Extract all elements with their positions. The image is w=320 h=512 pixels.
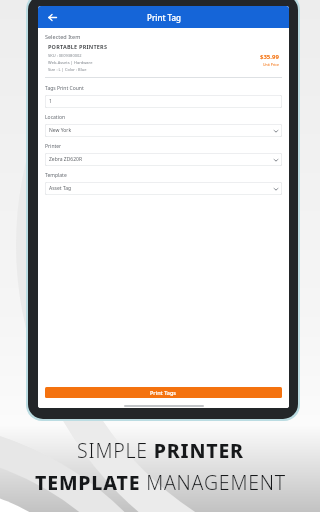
button[interactable]: New York — [45, 124, 282, 137]
staticText: Print Tags — [150, 389, 177, 396]
staticText: SIMPLE PRINTER — [77, 437, 244, 464]
staticText: TEMPLATE MANAGEMENT — [35, 469, 286, 496]
staticText: Location — [45, 114, 66, 121]
staticText: PORTABLE PRINTERS — [48, 43, 108, 50]
staticText: Size : L | Color : Blue — [48, 67, 87, 72]
staticText: Template — [45, 172, 67, 179]
staticText: Selected Item — [45, 33, 81, 40]
button[interactable]: Print Tags — [45, 387, 282, 398]
button[interactable]: Asset Tag — [45, 182, 282, 195]
staticText: $35.99 — [260, 53, 279, 61]
staticText: 1 — [49, 98, 52, 105]
staticText: Print Tag — [147, 12, 181, 23]
button[interactable]: 1 — [45, 95, 282, 108]
staticText: Tags Print Count — [45, 85, 84, 92]
button[interactable]: Back — [43, 8, 61, 26]
staticText: Asset Tag — [49, 185, 72, 192]
staticText: Zebra ZD620R — [49, 156, 83, 163]
staticText: Web-Assets | Hardware — [48, 60, 93, 65]
staticText: New York — [49, 127, 72, 134]
staticText: Printer — [45, 143, 62, 150]
staticText: SKU : 0E09380002 — [48, 53, 82, 58]
staticText: Unit Price — [263, 62, 279, 67]
button[interactable]: Zebra ZD620R — [45, 153, 282, 166]
